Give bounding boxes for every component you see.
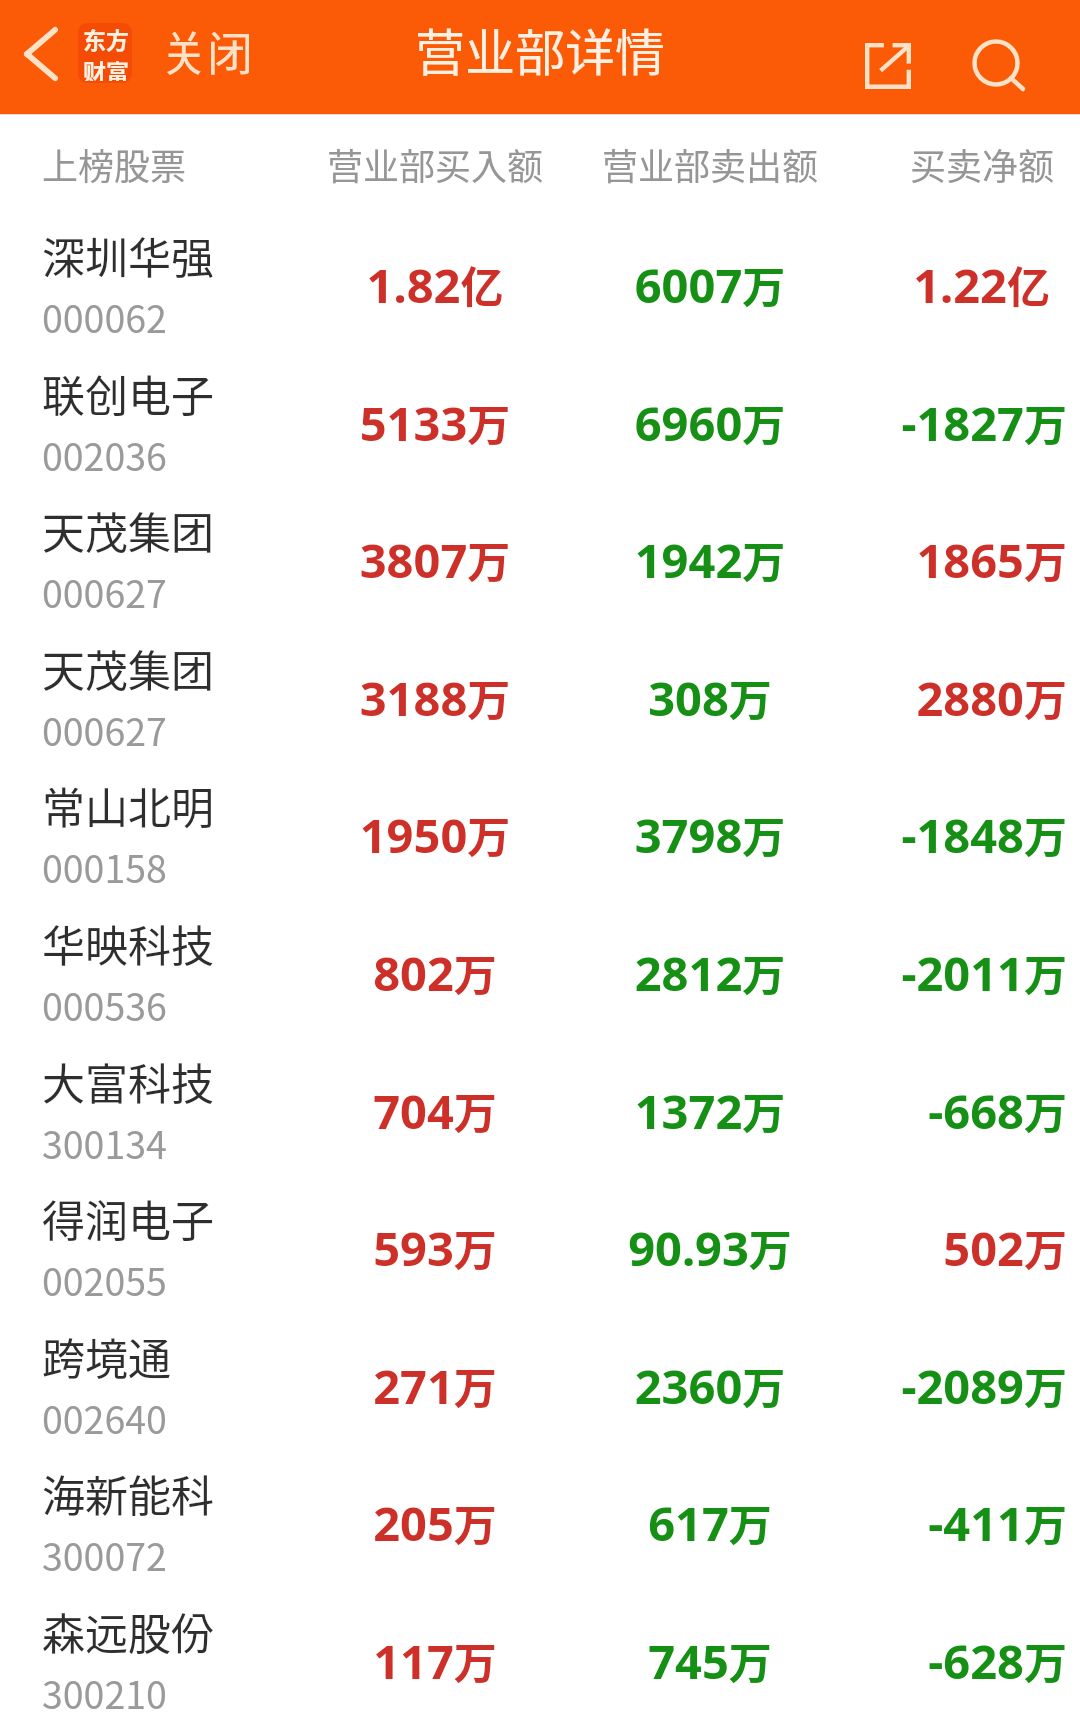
staticText: 3807万 — [285, 528, 585, 592]
staticText: -1827万 — [747, 391, 1067, 455]
staticText: 593万 — [285, 1216, 585, 1280]
staticText: 002055 — [42, 1252, 167, 1306]
staticText: 271万 — [285, 1354, 585, 1418]
staticText: 000158 — [42, 839, 167, 893]
button[interactable]: 得润电子 — [0, 1144, 1080, 1282]
staticText: 东方 — [83, 23, 129, 55]
staticText: 000536 — [42, 977, 167, 1031]
staticText: 1950万 — [285, 803, 585, 867]
staticText: 2360万 — [560, 1354, 860, 1418]
button[interactable]: 海新能科 — [0, 1419, 1080, 1557]
staticText: 跨境通 — [42, 1325, 171, 1387]
staticText: -1848万 — [747, 803, 1067, 867]
staticText: 300134 — [42, 1115, 167, 1169]
button[interactable]: 关闭 — [156, 18, 256, 96]
staticText: 森远股份 — [42, 1600, 214, 1662]
staticText: 6007万 — [560, 253, 860, 317]
staticText: 300072 — [42, 1527, 167, 1581]
staticText: 联创电子 — [42, 362, 214, 424]
staticText: 营业部买入额 — [327, 138, 543, 190]
button[interactable]: 天茂集团 — [0, 594, 1080, 732]
button[interactable]: 大富科技 — [0, 1007, 1080, 1145]
staticText: -628万 — [747, 1629, 1067, 1693]
staticText: 买卖净额 — [754, 138, 1054, 190]
staticText: 大富科技 — [42, 1050, 214, 1112]
staticText: 502万 — [747, 1216, 1067, 1280]
staticText: 3798万 — [560, 803, 860, 867]
staticText: 1942万 — [560, 528, 860, 592]
staticText: -668万 — [747, 1079, 1067, 1143]
staticText: 营业部卖出额 — [602, 138, 818, 190]
staticText: 000062 — [42, 289, 167, 343]
staticText: 常山北明 — [42, 774, 214, 836]
staticText: 745万 — [560, 1629, 860, 1693]
button[interactable]: 天茂集团 — [0, 456, 1080, 594]
staticText: 天茂集团 — [42, 499, 214, 561]
staticText: -2089万 — [747, 1354, 1067, 1418]
button[interactable]: 华映科技 — [0, 869, 1080, 1007]
staticText: 617万 — [560, 1491, 860, 1555]
staticText: 华映科技 — [42, 912, 214, 974]
button[interactable]: 森远股份 — [0, 1557, 1080, 1695]
button[interactable]: 深圳华强 — [0, 181, 1080, 319]
staticText: 000627 — [42, 702, 167, 756]
staticText: 上榜股票 — [42, 138, 187, 190]
staticText: -411万 — [747, 1491, 1067, 1555]
staticText: 得润电子 — [42, 1187, 214, 1249]
staticText: 000627 — [42, 564, 167, 618]
staticText: 1372万 — [560, 1079, 860, 1143]
staticText: 3188万 — [285, 666, 585, 730]
staticText: 1.82亿 — [285, 253, 585, 317]
staticText: 002036 — [42, 427, 167, 481]
button[interactable]: 东方财富 — [78, 23, 132, 83]
staticText: 海新能科 — [42, 1462, 214, 1524]
button[interactable]: Search — [962, 29, 1030, 97]
button[interactable]: 联创电子 — [0, 319, 1080, 457]
button[interactable]: Share — [854, 32, 922, 100]
staticText: 704万 — [285, 1079, 585, 1143]
staticText: 5133万 — [285, 391, 585, 455]
button[interactable]: 跨境通 — [0, 1282, 1080, 1420]
staticText: 1865万 — [747, 528, 1067, 592]
staticText: 6960万 — [560, 391, 860, 455]
staticText: 002640 — [42, 1390, 167, 1444]
staticText: 1.22亿 — [730, 253, 1050, 317]
staticText: 308万 — [560, 666, 860, 730]
staticText: 2812万 — [560, 941, 860, 1005]
staticText: 300210 — [42, 1665, 167, 1719]
staticText: 天茂集团 — [42, 637, 214, 699]
staticText: 802万 — [285, 941, 585, 1005]
staticText: 营业部详情 — [415, 13, 665, 85]
staticText: 财富 — [83, 54, 129, 81]
staticText: 205万 — [285, 1491, 585, 1555]
staticText: 117万 — [285, 1629, 585, 1693]
button[interactable]: Back — [7, 20, 74, 88]
staticText: 深圳华强 — [42, 224, 214, 286]
staticText: 90.93万 — [560, 1216, 860, 1280]
button[interactable]: 常山北明 — [0, 731, 1080, 869]
staticText: -2011万 — [747, 941, 1067, 1005]
staticText: 2880万 — [747, 666, 1067, 730]
staticText: 关闭 — [161, 17, 253, 84]
